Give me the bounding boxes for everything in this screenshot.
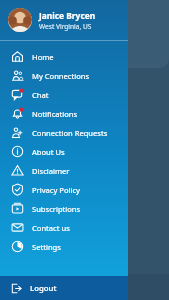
button[interactable]: Settings (0, 237, 128, 256)
button[interactable]: Subscriptions (0, 199, 128, 218)
button[interactable]: Privacy Policy (0, 180, 128, 199)
staticText: Notifications (32, 109, 78, 119)
button[interactable]: Disclaimer (0, 161, 128, 180)
staticText: Privacy Policy (32, 185, 80, 195)
staticText: Subscriptions (32, 204, 81, 214)
button[interactable]: My Connections (0, 66, 128, 85)
button[interactable]: Home (0, 47, 128, 66)
button[interactable]: About Us (0, 142, 128, 161)
staticText: About Us (32, 147, 65, 157)
staticText: Logout (30, 283, 57, 294)
staticText: Connection Requests (32, 128, 108, 138)
staticText: Janice Brycen (39, 10, 96, 21)
staticText: My Connections (32, 71, 90, 81)
staticText: Contact us (32, 223, 70, 233)
button[interactable]: Notifications (0, 104, 128, 123)
staticText: West Virginia, US (39, 22, 92, 31)
staticText: Home (32, 52, 54, 62)
button[interactable]: Connection Requests (0, 123, 128, 142)
button[interactable]: Contact us (0, 218, 128, 237)
staticText: Settings (32, 242, 61, 252)
button[interactable]: Janice Brycen (0, 0, 128, 40)
button[interactable]: Chat (0, 85, 128, 104)
button[interactable]: Logout (0, 276, 128, 300)
staticText: Disclaimer (32, 166, 70, 176)
staticText: Chat (32, 90, 49, 100)
